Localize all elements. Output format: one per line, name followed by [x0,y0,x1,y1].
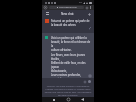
staticText: Voici un poème qui célèbre la beauté, la… [51,36,92,52]
button[interactable]: Account [88,80,91,83]
staticText: 4G [79,1,82,4]
button[interactable]: Tabs [44,6,47,9]
button[interactable]: New chat [87,12,91,16]
staticText: ChatGPT can make mistakes. Free Research… [44,85,92,97]
staticText: Les fleurs, avec leurs jeunes étoiles, B… [51,53,92,78]
button[interactable]: Refresh [85,6,88,9]
staticText: chat.openai.com [59,6,77,9]
button[interactable]: Home [65,97,72,102]
button[interactable]: Regenerate response [83,80,86,83]
staticText: Fais-moi un poème qui parle de la beauté… [51,19,92,27]
button[interactable]: chat.openai.com [49,6,84,9]
button[interactable]: Back [79,97,86,102]
button[interactable]: Recent apps [50,97,57,102]
button[interactable]: Edit message [89,27,91,29]
button[interactable]: Open menu [45,12,49,16]
staticText: New chat [61,12,74,16]
button[interactable]: More options [89,6,92,9]
